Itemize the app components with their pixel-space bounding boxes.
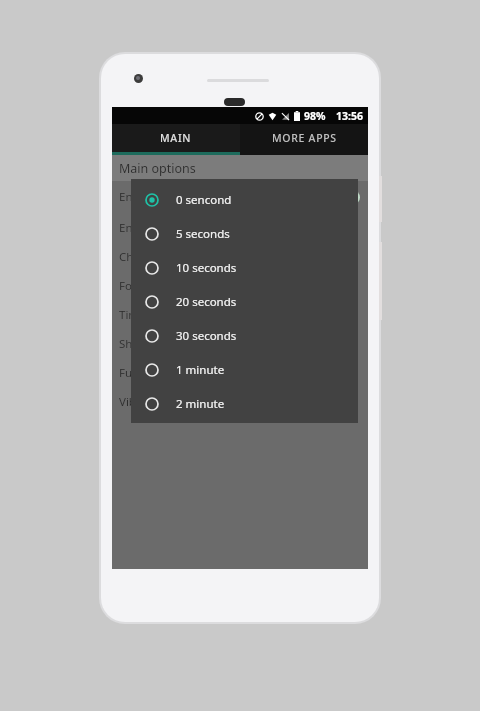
button[interactable]: Full Screen: [112, 358, 368, 387]
button[interactable]: 0 sencond: [131, 183, 358, 217]
button[interactable]: Show Date: [112, 329, 368, 358]
staticText: Enable Lock: [119, 189, 184, 205]
button[interactable]: 10 seconds: [131, 251, 358, 285]
staticText: 20 seconds: [176, 294, 237, 310]
staticText: MAIN: [160, 131, 192, 145]
staticText: 13:56: [336, 109, 363, 123]
staticText: Enable Sound: [119, 220, 194, 236]
staticText: Vibrate: [119, 394, 158, 410]
staticText: 0 sencond: [176, 192, 232, 208]
button[interactable]: Forget Password: [112, 271, 368, 300]
button[interactable]: 1 minute: [131, 353, 358, 387]
staticText: MORE APPS: [272, 131, 337, 145]
button[interactable]: MORE APPS: [240, 124, 368, 155]
staticText: 2 minute: [176, 396, 225, 412]
staticText: Show Date: [119, 336, 177, 352]
staticText: Time Format: [119, 307, 188, 323]
button[interactable]: Time Format: [112, 300, 368, 329]
button[interactable]: Enable Lock: [112, 181, 368, 213]
staticText: 10 seconds: [176, 260, 237, 276]
staticText: Forget Password: [119, 278, 210, 294]
button[interactable]: MAIN: [112, 124, 240, 155]
button[interactable]: Change Password: [112, 242, 368, 271]
staticText: Full Screen: [119, 365, 178, 381]
staticText: 30 seconds: [176, 328, 237, 344]
staticText: 1 minute: [176, 362, 225, 378]
button[interactable]: 20 seconds: [131, 285, 358, 319]
button[interactable]: 5 seconds: [131, 217, 358, 251]
button[interactable]: 2 minute: [131, 387, 358, 421]
staticText: Main options: [119, 160, 196, 177]
staticText: 98%: [304, 109, 326, 123]
staticText: 5 seconds: [176, 226, 230, 242]
staticText: Change Password: [119, 249, 216, 265]
button[interactable]: Enable Sound: [112, 213, 368, 242]
button[interactable]: 30 seconds: [131, 319, 358, 353]
button[interactable]: Vibrate: [112, 387, 368, 416]
